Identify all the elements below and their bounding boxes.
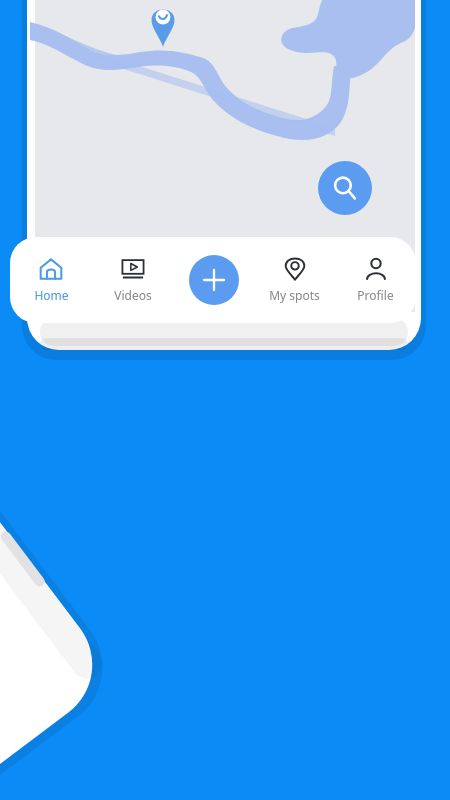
button[interactable]: Home	[10, 237, 92, 323]
button[interactable]: Add	[189, 255, 239, 305]
staticText: Videos	[114, 287, 152, 303]
staticText: Home	[34, 287, 69, 303]
staticText: My spots	[269, 287, 320, 303]
staticText: Profile	[357, 287, 394, 303]
button[interactable]: My spots	[254, 237, 335, 323]
button[interactable]: Videos	[92, 237, 173, 323]
button[interactable]: Profile	[335, 237, 416, 323]
button[interactable]: Search	[318, 161, 372, 215]
